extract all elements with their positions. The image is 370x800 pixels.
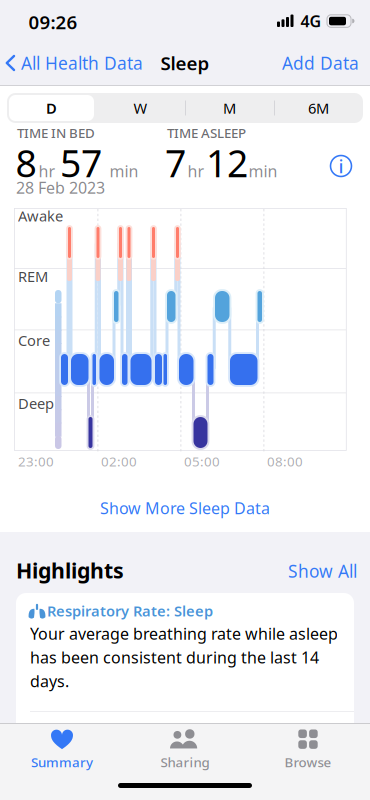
button[interactable]: All Health Data (5, 51, 143, 74)
button[interactable]: Summary (31, 729, 93, 771)
staticText: 12 (206, 138, 248, 188)
staticText: Show All (288, 559, 357, 582)
button[interactable] (16, 593, 354, 733)
staticText: Summary (31, 753, 93, 771)
staticText: 57 (60, 138, 102, 188)
staticText: days. (30, 670, 69, 692)
button[interactable]: D (7, 93, 96, 123)
staticText: i (338, 154, 343, 178)
staticText: 4G (300, 10, 321, 32)
button[interactable]: Show All (288, 559, 357, 582)
staticText: Deep (18, 393, 54, 413)
staticText: 8 (15, 138, 36, 188)
staticText: REM (18, 266, 48, 286)
staticText: Sharing (160, 753, 209, 771)
staticText: Awake (18, 206, 63, 225)
button[interactable]: Info (330, 154, 351, 178)
button[interactable]: M (185, 93, 274, 123)
staticText: hr (38, 160, 55, 182)
staticText: Highlights (16, 556, 124, 584)
staticText: TIME ASLEEP (167, 124, 246, 142)
staticText: hr (187, 160, 204, 182)
button[interactable]: 6M (274, 93, 363, 123)
staticText: 05:00 (184, 452, 220, 470)
staticText: Core (18, 330, 50, 350)
button[interactable]: Show More Sleep Data (100, 497, 270, 519)
staticText: Respiratory Rate: Sleep (47, 601, 213, 620)
staticText: 09:26 (28, 10, 77, 34)
button[interactable]: W (96, 93, 185, 123)
staticText: D (46, 98, 57, 118)
staticText: Your average breathing rate while asleep (30, 623, 338, 644)
staticText: min (248, 160, 277, 182)
staticText: TIME IN BED (17, 124, 95, 142)
staticText: 7 (165, 138, 186, 188)
staticText: 08:00 (267, 452, 303, 470)
staticText: 6M (308, 98, 329, 118)
staticText: Show More Sleep Data (100, 497, 270, 519)
staticText: M (223, 98, 236, 118)
staticText: Add Data (282, 51, 359, 74)
button[interactable]: Add Data (282, 51, 359, 74)
staticText: All Health Data (21, 51, 143, 74)
staticText: min (109, 160, 138, 182)
staticText: Sleep (160, 51, 209, 75)
staticText: Browse (284, 753, 331, 771)
staticText: 02:00 (101, 452, 137, 470)
staticText: 23:00 (18, 452, 54, 470)
button[interactable]: Sharing (160, 729, 209, 771)
staticText: W (133, 98, 147, 118)
staticText: 28 Feb 2023 (16, 177, 105, 198)
button[interactable]: Browse (284, 729, 331, 771)
staticText: has been consistent during the last 14 (30, 647, 319, 668)
